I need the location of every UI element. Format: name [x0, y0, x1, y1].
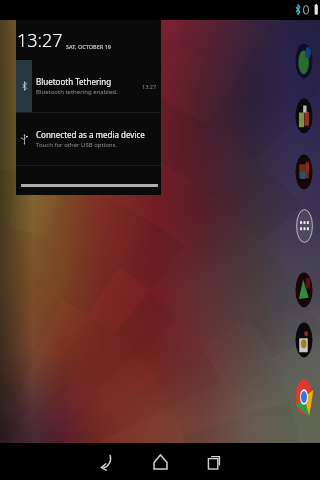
staticText: 13:27 [17, 28, 63, 53]
staticText: Bluetooth tethering enabled. [36, 88, 118, 96]
button[interactable]: Back [88, 443, 124, 480]
button[interactable]: Earth [295, 43, 313, 79]
button[interactable]: Connected as a media device [16, 113, 161, 165]
button[interactable]: Home [142, 443, 178, 480]
button[interactable]: Games [295, 272, 313, 308]
staticText: 13:27 [142, 83, 157, 90]
staticText: Bluetooth Tethering [36, 76, 112, 87]
button[interactable] [16, 175, 161, 195]
button[interactable]: Apps [296, 209, 313, 243]
staticText: Touch for other USB options. [36, 141, 118, 149]
button[interactable]: Bluetooth Tethering [16, 60, 161, 112]
button[interactable]: Chrome [295, 379, 313, 415]
button[interactable]: Recents [196, 443, 232, 480]
staticText: SAT, OCTOBER 19 [66, 43, 111, 50]
staticText: Connected as a media device [36, 129, 145, 140]
button[interactable]: Photos [295, 154, 313, 190]
button[interactable]: Books [295, 98, 313, 134]
button[interactable]: Play Store [295, 322, 313, 358]
